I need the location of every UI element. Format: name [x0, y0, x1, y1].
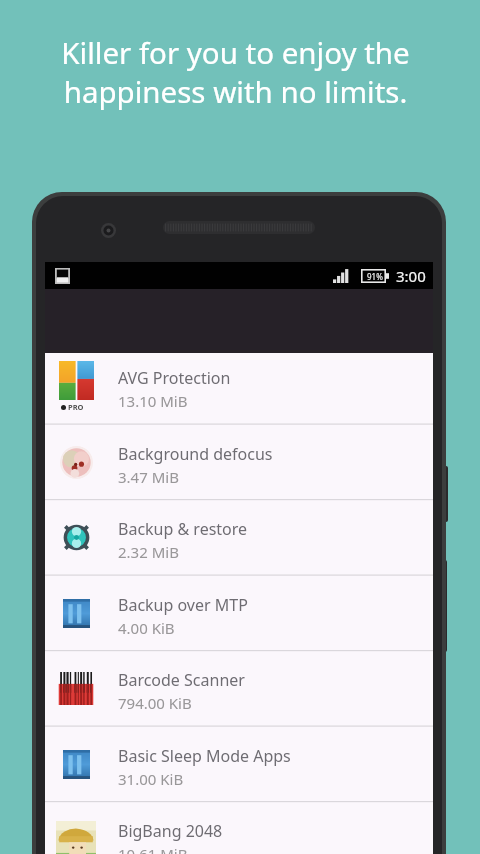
staticText: Background defocus [118, 443, 273, 465]
staticText: 3.47 MiB [118, 467, 179, 487]
staticText: Barcode Scanner [118, 669, 245, 691]
staticText: 31.00 KiB [118, 769, 184, 789]
staticText: 13.10 MiB [118, 391, 188, 411]
staticText: AVG Protection [118, 367, 231, 389]
button[interactable]: Barcode Scanner [45, 650, 433, 726]
staticText: Backup over MTP [118, 594, 248, 616]
staticText: 3:00 [396, 266, 426, 286]
button[interactable]: Background defocus [45, 424, 433, 500]
staticText: BigBang 2048 [118, 820, 223, 842]
button[interactable]: Basic Sleep Mode Apps [45, 726, 433, 802]
staticText: Backup & restore [118, 518, 248, 540]
staticText: 794.00 KiB [118, 693, 192, 713]
staticText: PRO [68, 402, 84, 412]
button[interactable]: Backup & restore [45, 499, 433, 575]
button[interactable]: Backup over MTP [45, 575, 433, 651]
staticText: Killer for you to enjoy the happiness wi… [61, 32, 410, 112]
staticText: Basic Sleep Mode Apps [118, 745, 291, 767]
staticText: 4.00 KiB [118, 618, 175, 638]
button[interactable]: BigBang 2048 [45, 801, 433, 854]
staticText: 2.32 MiB [118, 542, 179, 562]
staticText: 91% [367, 271, 383, 282]
button[interactable]: PRO [45, 348, 433, 424]
staticText: 10.61 MiB [118, 844, 188, 854]
